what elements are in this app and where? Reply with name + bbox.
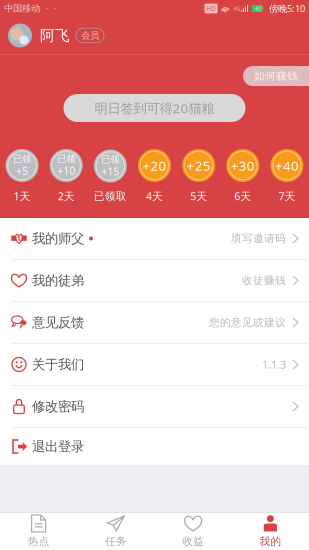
staticText: 中国移动	[4, 3, 40, 14]
staticText: 1天	[14, 189, 31, 203]
staticText: 4天	[146, 189, 163, 203]
button[interactable]: 我的	[232, 513, 309, 550]
button[interactable]: 收益	[154, 513, 232, 550]
staticText: 阿飞	[40, 26, 70, 44]
staticText: 我的徒弟	[32, 272, 84, 289]
staticText: 1.1.3	[262, 357, 286, 372]
staticText: 我的	[259, 535, 281, 548]
staticText: 热点	[28, 535, 50, 548]
button[interactable]: 关于我们	[0, 344, 309, 386]
staticText: 收徒赚钱	[242, 274, 286, 287]
staticText: 您的意见或建议	[209, 316, 286, 329]
staticText: 2天	[58, 189, 75, 203]
staticText: +25	[187, 157, 211, 174]
staticText: 4G	[233, 5, 240, 12]
staticText: 6天	[234, 189, 251, 203]
staticText: 会员	[81, 30, 99, 41]
button[interactable]: 我的师父	[0, 218, 309, 260]
staticText: 我的师父	[32, 230, 84, 247]
staticText: 43	[255, 5, 261, 12]
button[interactable]: 阿飞	[0, 17, 309, 54]
button[interactable]: 明日签到可得20猫粮	[63, 94, 245, 122]
staticText: HD	[206, 4, 216, 13]
staticText: 任务	[105, 535, 127, 548]
staticText: 意见反馈	[32, 314, 84, 331]
staticText: 7天	[278, 189, 295, 203]
staticText: +40	[275, 157, 299, 174]
button[interactable]: 任务	[77, 513, 154, 550]
button[interactable]: 我的徒弟	[0, 260, 309, 302]
button[interactable]: 热点	[0, 513, 77, 550]
staticText: 明日签到可得20猫粮	[94, 99, 214, 117]
staticText: 已领取	[94, 189, 127, 203]
staticText: +30	[231, 157, 255, 174]
staticText: +10	[57, 164, 75, 178]
staticText: 退出登录	[32, 438, 84, 455]
staticText: 关于我们	[32, 356, 84, 373]
button[interactable]: 修改密码	[0, 386, 309, 428]
staticText: 如何赚钱	[254, 69, 298, 82]
staticText: 已领	[101, 154, 119, 165]
staticText: 修改密码	[32, 398, 84, 415]
staticText: +20	[142, 157, 166, 174]
staticText: 收益	[182, 535, 204, 548]
staticText: +15	[101, 164, 119, 178]
button[interactable]: 退出登录	[0, 428, 309, 465]
staticText: 已领	[57, 153, 75, 165]
staticText: ᐧ ᐧ	[40, 3, 56, 14]
staticText: 傍晚5:10	[269, 2, 305, 15]
staticText: 填写邀请码	[231, 232, 286, 245]
staticText: 已领	[13, 153, 31, 165]
staticText: 5天	[190, 189, 207, 203]
staticText: +5	[16, 164, 28, 178]
button[interactable]: 如何赚钱	[234, 66, 309, 86]
button[interactable]: 意见反馈	[0, 302, 309, 344]
